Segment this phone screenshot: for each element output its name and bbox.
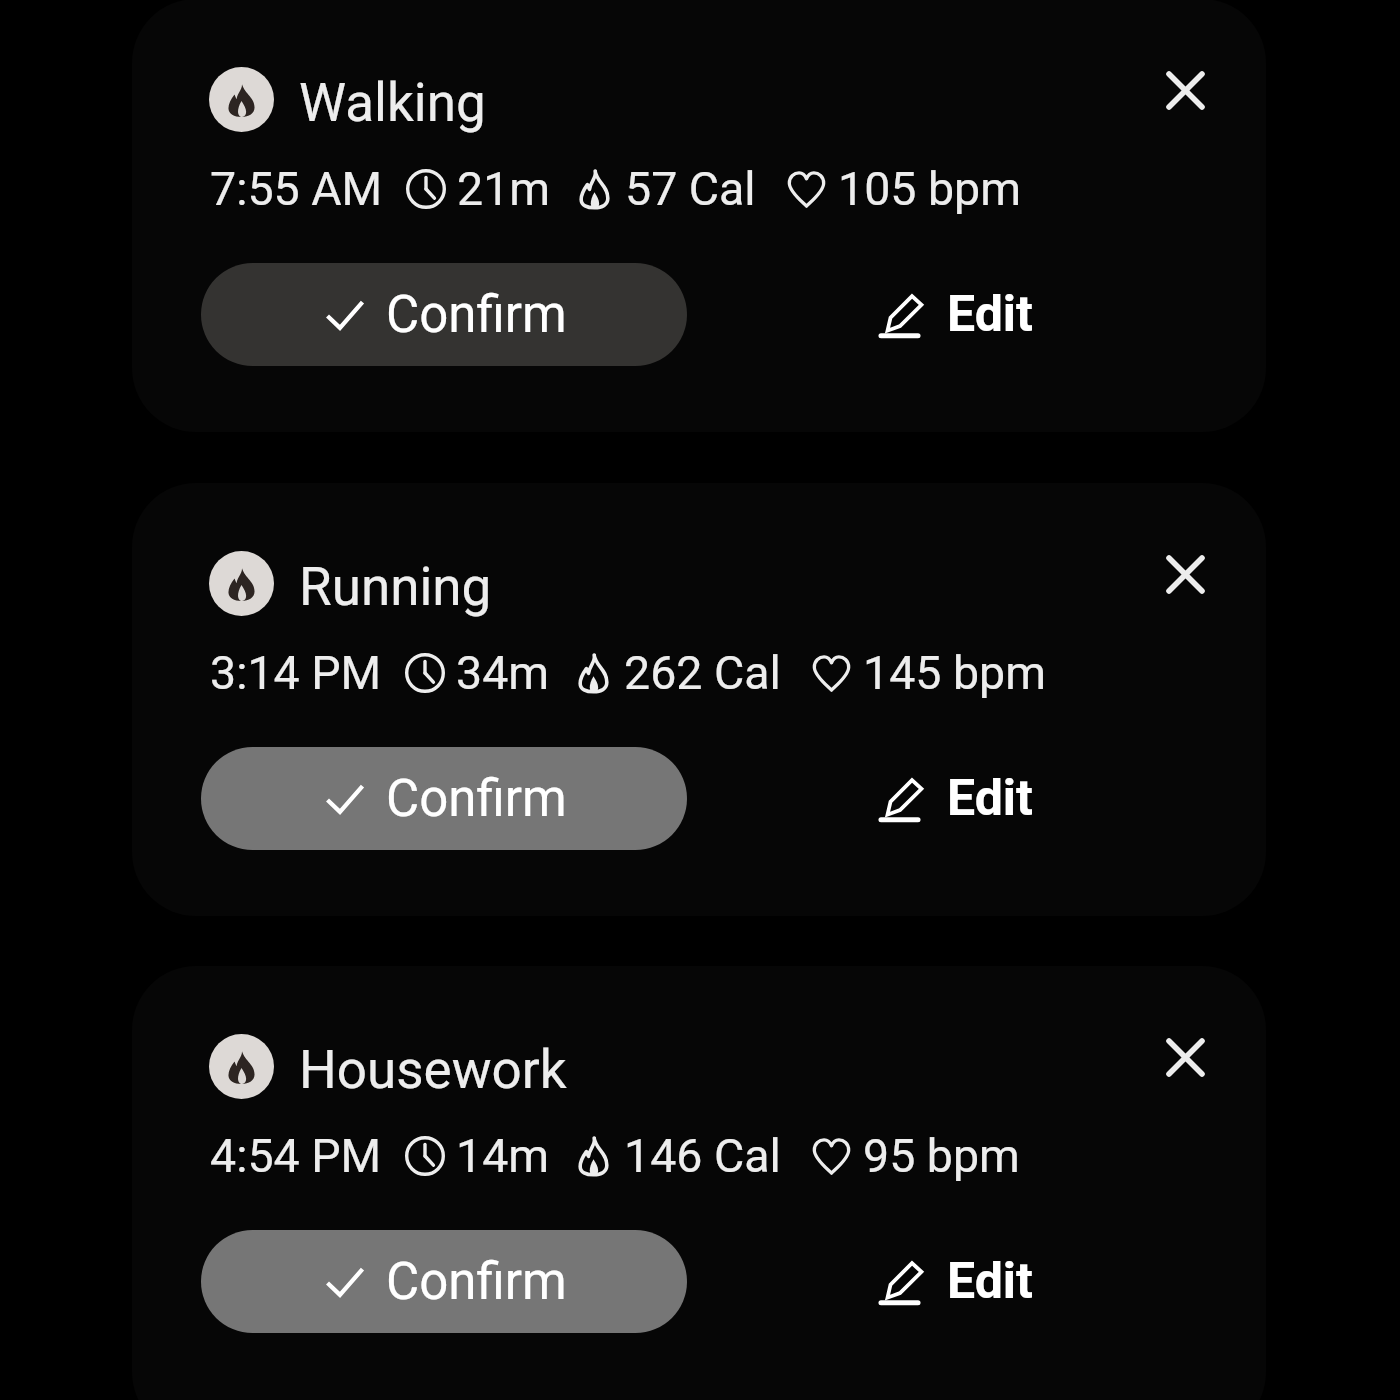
button[interactable]: Edit <box>879 285 1033 344</box>
staticText: Running <box>299 556 492 618</box>
button[interactable]: Confirm <box>201 263 687 366</box>
staticText: 34m <box>456 646 550 700</box>
button[interactable]: Edit <box>879 1252 1033 1311</box>
staticText: 3:14 PM <box>210 646 382 700</box>
button[interactable]: Dismiss <box>1147 536 1223 612</box>
staticText: 262 Cal <box>624 646 781 700</box>
staticText: 95 bpm <box>863 1129 1020 1183</box>
staticText: Housework <box>299 1039 567 1101</box>
button[interactable]: Dismiss <box>1147 1019 1223 1095</box>
button[interactable]: Dismiss <box>1147 52 1223 128</box>
staticText: 57 Cal <box>625 162 756 216</box>
staticText: 14m <box>456 1129 550 1183</box>
staticText: 145 bpm <box>863 646 1046 700</box>
staticText: 4:54 PM <box>210 1129 382 1183</box>
staticText: 146 Cal <box>624 1129 781 1183</box>
staticText: Walking <box>299 72 486 134</box>
staticText: 7:55 AM <box>210 162 383 216</box>
staticText: 21m <box>457 162 551 216</box>
staticText: Confirm <box>386 1252 567 1312</box>
staticText: Edit <box>947 1252 1033 1311</box>
staticText: 105 bpm <box>838 162 1021 216</box>
button[interactable]: Confirm <box>201 747 687 850</box>
staticText: Edit <box>947 769 1033 828</box>
staticText: Confirm <box>386 285 567 345</box>
button[interactable]: Confirm <box>201 1230 687 1333</box>
staticText: Confirm <box>386 769 567 829</box>
staticText: Edit <box>947 285 1033 344</box>
button[interactable]: Edit <box>879 769 1033 828</box>
